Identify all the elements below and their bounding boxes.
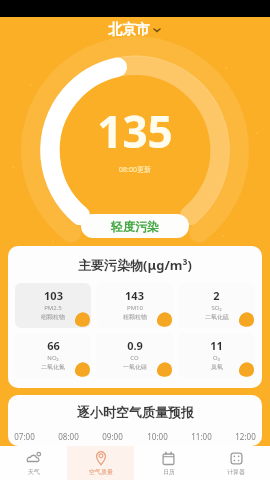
staticText: 二氧化氮 [41, 363, 65, 371]
staticText: CO [130, 354, 139, 362]
staticText: 12:00 [235, 431, 256, 442]
staticText: 09:00 [102, 431, 123, 442]
staticText: 08:00 [58, 431, 79, 442]
staticText: 11:00 [191, 431, 212, 442]
staticText: 0.9 [127, 338, 143, 353]
staticText: 主要污染物(μg/m³) [78, 256, 192, 274]
staticText: 计算器 [227, 468, 245, 476]
button[interactable]: 轻度污染 [81, 214, 189, 238]
button[interactable]: 北京市 [0, 17, 270, 43]
staticText: 北京市 [108, 21, 150, 39]
button[interactable]: 日历 [134, 446, 202, 480]
staticText: 轻度污染 [111, 219, 159, 234]
button[interactable]: 空气质量 [67, 446, 134, 480]
staticText: 天气 [28, 468, 40, 476]
staticText: 143 [125, 288, 144, 303]
staticText: 日历 [163, 468, 175, 476]
staticText: 11 [210, 338, 223, 353]
staticText: 10:00 [147, 431, 168, 442]
button[interactable]: 66 [15, 333, 91, 378]
button[interactable]: 103 [15, 283, 91, 328]
staticText: 臭氧 [211, 363, 223, 371]
staticText: 08:00更新 [119, 165, 151, 175]
staticText: 粗颗粒物 [123, 313, 147, 321]
staticText: O₃ [213, 354, 220, 362]
staticText: 07:00 [14, 431, 35, 442]
staticText: 二氧化硫 [205, 313, 229, 321]
staticText: 103 [44, 288, 63, 303]
staticText: SO₂ [211, 304, 222, 312]
staticText: 66 [47, 338, 60, 353]
staticText: PM10 [127, 304, 143, 312]
staticText: PM2.5 [44, 304, 62, 312]
staticText: 135 [97, 101, 173, 161]
staticText: NO₂ [47, 354, 59, 362]
button[interactable]: 0.9 [96, 333, 173, 378]
staticText: 2 [213, 288, 220, 303]
button[interactable]: 计算器 [202, 446, 270, 480]
button[interactable]: 天气 [0, 446, 67, 480]
button[interactable]: 11 [178, 333, 255, 378]
staticText: 空气质量 [89, 468, 113, 476]
staticText: 逐小时空气质量预报 [77, 404, 194, 420]
staticText: 细颗粒物 [41, 313, 65, 321]
staticText: 一氧化碳 [123, 363, 147, 371]
button[interactable]: 143 [96, 283, 173, 328]
button[interactable]: 2 [178, 283, 255, 328]
